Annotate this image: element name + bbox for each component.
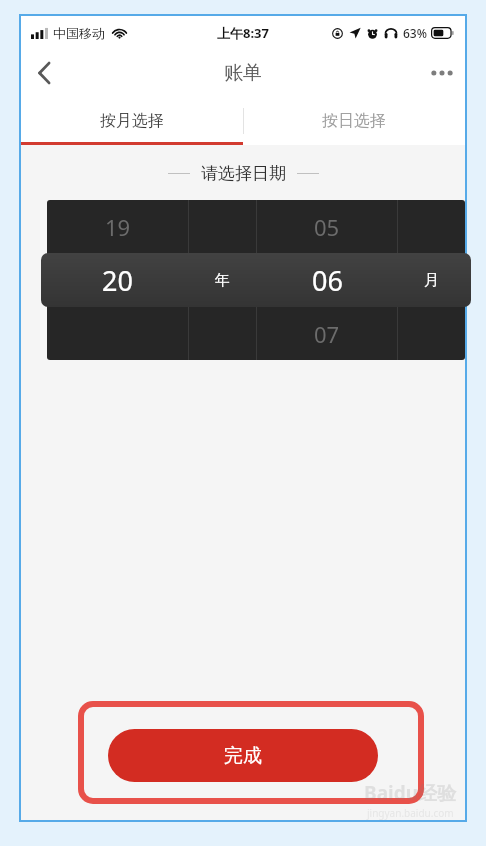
- staticText: 账单: [224, 61, 262, 85]
- staticText: 完成: [224, 744, 262, 768]
- staticText: 中国移动: [53, 25, 105, 41]
- staticText: 请选择日期: [201, 163, 286, 184]
- staticText: 月: [424, 271, 439, 290]
- staticText: 上午8:37: [217, 24, 269, 42]
- button[interactable]: [398, 200, 465, 360]
- staticText: 20: [102, 262, 133, 299]
- button[interactable]: [189, 200, 256, 360]
- staticText: 按日选择: [322, 111, 386, 131]
- staticText: 按月选择: [100, 111, 164, 131]
- button[interactable]: 19: [47, 200, 188, 360]
- staticText: 06: [312, 262, 343, 299]
- button[interactable]: 按月选择: [21, 96, 243, 145]
- staticText: 年: [215, 271, 230, 290]
- button[interactable]: More options: [419, 50, 465, 96]
- button[interactable]: 05: [257, 200, 397, 360]
- staticText: Baidu经验: [364, 780, 457, 806]
- staticText: jingyan.baidu.com: [367, 806, 454, 820]
- staticText: 63%: [403, 25, 427, 41]
- button[interactable]: 按日选择: [243, 96, 465, 145]
- staticText: 05: [314, 212, 340, 242]
- staticText: 07: [314, 319, 340, 349]
- button[interactable]: Back: [21, 50, 67, 96]
- staticText: 19: [105, 212, 131, 242]
- button[interactable]: 完成: [108, 729, 378, 782]
